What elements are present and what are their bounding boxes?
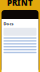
staticText: Docs: [3, 21, 13, 26]
staticText: fast documents: [9, 9, 31, 12]
staticText: PRINT: [7, 0, 33, 8]
